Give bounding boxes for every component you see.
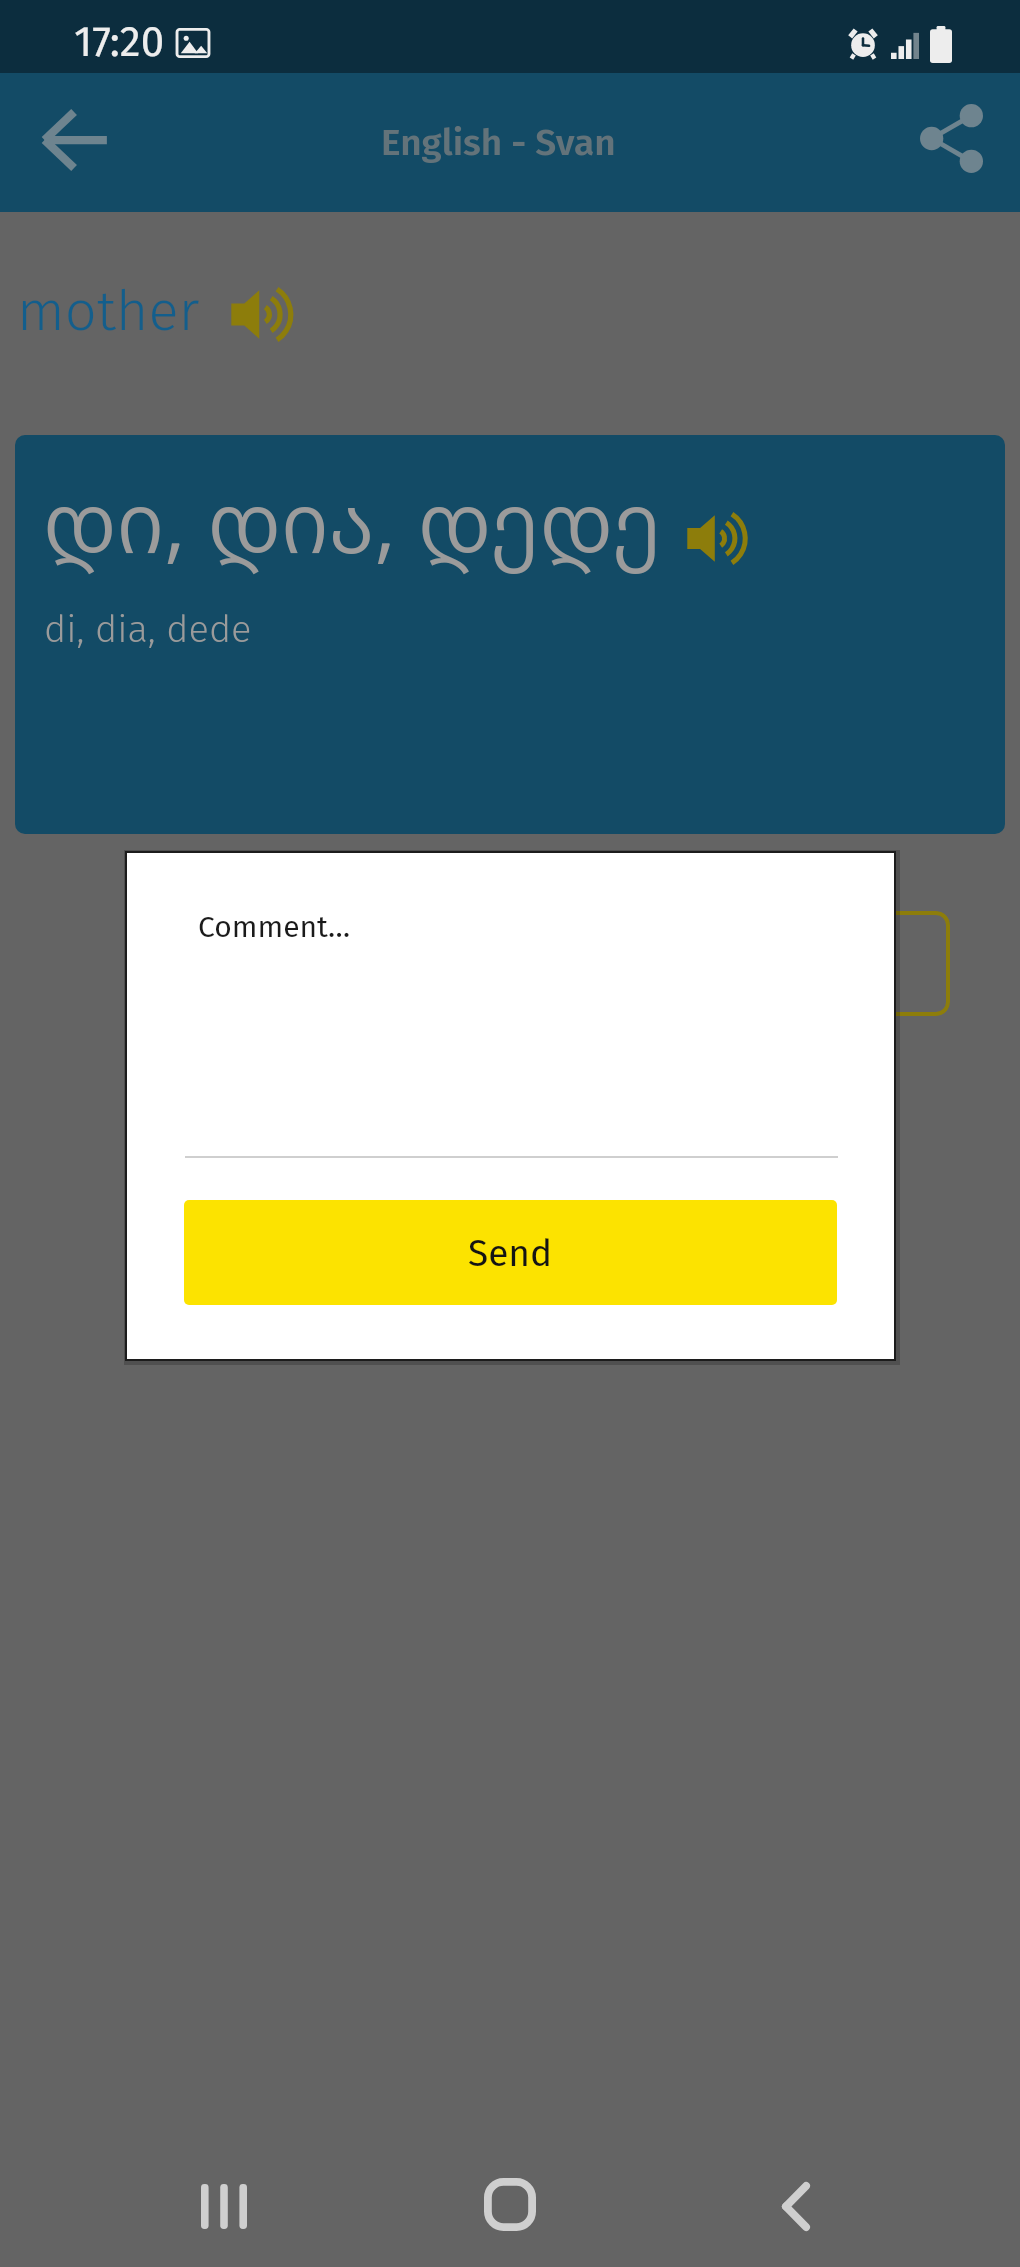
button[interactable]: Back [27,95,123,191]
button[interactable]: დი, დია, დედე [15,435,1005,834]
button[interactable]: Home [450,2154,570,2254]
staticText: 17:20 [74,17,165,67]
button[interactable]: mother [17,278,295,345]
staticText: Comment… [198,909,351,945]
staticText: di, dia, dede [44,606,252,652]
button[interactable]: Back [736,2156,856,2256]
button[interactable] [765,911,950,1016]
button[interactable]: Share [904,95,1000,191]
button[interactable]: Recent apps [164,2156,284,2256]
staticText: English - Svan [381,120,616,164]
button[interactable]: Send [184,1200,837,1305]
staticText: დი, დია, დედე [43,463,662,577]
staticText: mother [17,278,200,345]
staticText: Send [468,1231,553,1275]
